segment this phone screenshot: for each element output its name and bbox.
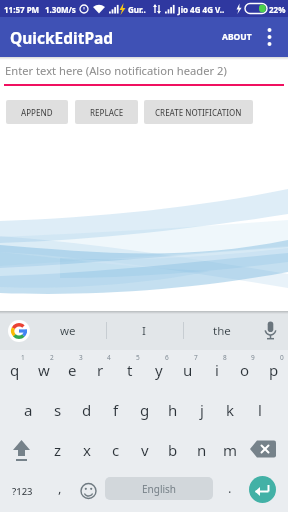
staticText: q xyxy=(10,360,20,380)
button[interactable]: b xyxy=(158,430,187,470)
button[interactable] xyxy=(249,476,276,503)
staticText: 7 xyxy=(194,353,198,362)
staticText: s xyxy=(54,400,62,420)
staticText: 5 xyxy=(136,353,140,362)
button[interactable] xyxy=(0,430,43,470)
button[interactable]: k xyxy=(216,390,245,430)
button[interactable]: APPEND xyxy=(6,100,68,124)
staticText: x xyxy=(83,440,91,460)
staticText: 8 xyxy=(223,353,227,362)
button[interactable] xyxy=(8,320,30,342)
staticText: r xyxy=(97,360,104,380)
button[interactable]: REPLACE xyxy=(75,100,138,124)
staticText: APPEND xyxy=(21,107,53,118)
button[interactable]: d xyxy=(72,390,101,430)
button[interactable]: o xyxy=(230,350,259,390)
button[interactable]: f xyxy=(101,390,130,430)
staticText: 22% xyxy=(269,4,286,15)
button[interactable]: c xyxy=(101,430,130,470)
staticText: ?123 xyxy=(12,485,33,498)
button[interactable]: y xyxy=(144,350,173,390)
staticText: y xyxy=(155,360,163,380)
staticText: Jio 4G 4G V.. xyxy=(178,4,225,15)
button[interactable]: we xyxy=(34,311,102,350)
button[interactable]: . xyxy=(216,470,244,512)
staticText: 9 xyxy=(251,353,255,362)
staticText: . xyxy=(228,479,232,497)
button[interactable]: m xyxy=(216,430,245,470)
button[interactable]: w xyxy=(29,350,58,390)
button[interactable]: g xyxy=(130,390,159,430)
staticText: u xyxy=(183,360,193,380)
button[interactable]: , xyxy=(44,470,76,512)
staticText: 1.30M/s xyxy=(45,4,76,15)
staticText: b xyxy=(168,440,178,460)
staticText: REPLACE xyxy=(90,107,124,118)
staticText: l xyxy=(258,400,262,420)
button[interactable] xyxy=(245,430,288,470)
staticText: 4 xyxy=(107,353,111,362)
staticText: Enter text here (Also notification heade… xyxy=(5,63,227,78)
staticText: we xyxy=(60,323,76,339)
staticText: n xyxy=(197,440,207,460)
staticText: I xyxy=(142,323,146,339)
staticText: a xyxy=(24,400,33,420)
button[interactable]: English xyxy=(105,477,213,500)
button[interactable]: t xyxy=(115,350,144,390)
button[interactable]: l xyxy=(245,390,274,430)
button[interactable] xyxy=(76,470,102,512)
staticText: v xyxy=(141,440,149,460)
button[interactable] xyxy=(258,318,283,343)
button[interactable]: I xyxy=(112,311,176,350)
staticText: QuickEditPad xyxy=(10,27,114,48)
button[interactable]: h xyxy=(158,390,187,430)
button[interactable]: i xyxy=(202,350,231,390)
button[interactable]: u xyxy=(173,350,202,390)
staticText: 3 xyxy=(79,353,83,362)
button[interactable] xyxy=(264,17,288,57)
button[interactable]: v xyxy=(130,430,159,470)
staticText: g xyxy=(140,400,150,420)
button[interactable]: a xyxy=(14,390,43,430)
staticText: o xyxy=(240,360,250,380)
button[interactable]: n xyxy=(187,430,216,470)
button[interactable]: ?123 xyxy=(0,470,44,512)
button[interactable]: e xyxy=(58,350,87,390)
staticText: ABOUT xyxy=(222,31,252,43)
staticText: Gur.. xyxy=(128,4,146,15)
staticText: c xyxy=(112,440,120,460)
staticText: e xyxy=(68,360,77,380)
button[interactable]: p xyxy=(259,350,288,390)
button[interactable]: the xyxy=(190,311,254,350)
staticText: p xyxy=(269,360,279,380)
staticText: , xyxy=(58,479,62,497)
staticText: English xyxy=(142,482,177,496)
staticText: CREATE NOTIFICATION xyxy=(155,107,242,118)
staticText: i xyxy=(215,360,219,380)
staticText: k xyxy=(226,400,235,420)
button[interactable]: r xyxy=(86,350,115,390)
button[interactable]: CREATE NOTIFICATION xyxy=(144,100,253,124)
staticText: m xyxy=(223,440,238,460)
staticText: 0 xyxy=(280,353,284,362)
staticText: 6 xyxy=(165,353,169,362)
staticText: 2 xyxy=(50,353,54,362)
staticText: 11:57 PM xyxy=(4,4,40,15)
button[interactable]: s xyxy=(43,390,72,430)
button[interactable]: j xyxy=(187,390,216,430)
staticText: d xyxy=(82,400,92,420)
staticText: j xyxy=(200,400,204,420)
staticText: t xyxy=(127,360,133,380)
staticText: z xyxy=(54,440,62,460)
staticText: h xyxy=(168,400,178,420)
button[interactable]: x xyxy=(72,430,101,470)
staticText: w xyxy=(38,360,50,380)
staticText: f xyxy=(113,400,119,420)
button[interactable]: ABOUT xyxy=(218,27,256,47)
button[interactable]: z xyxy=(43,430,72,470)
button[interactable]: q xyxy=(0,350,29,390)
staticText: the xyxy=(213,323,231,339)
staticText: 1 xyxy=(21,353,25,362)
